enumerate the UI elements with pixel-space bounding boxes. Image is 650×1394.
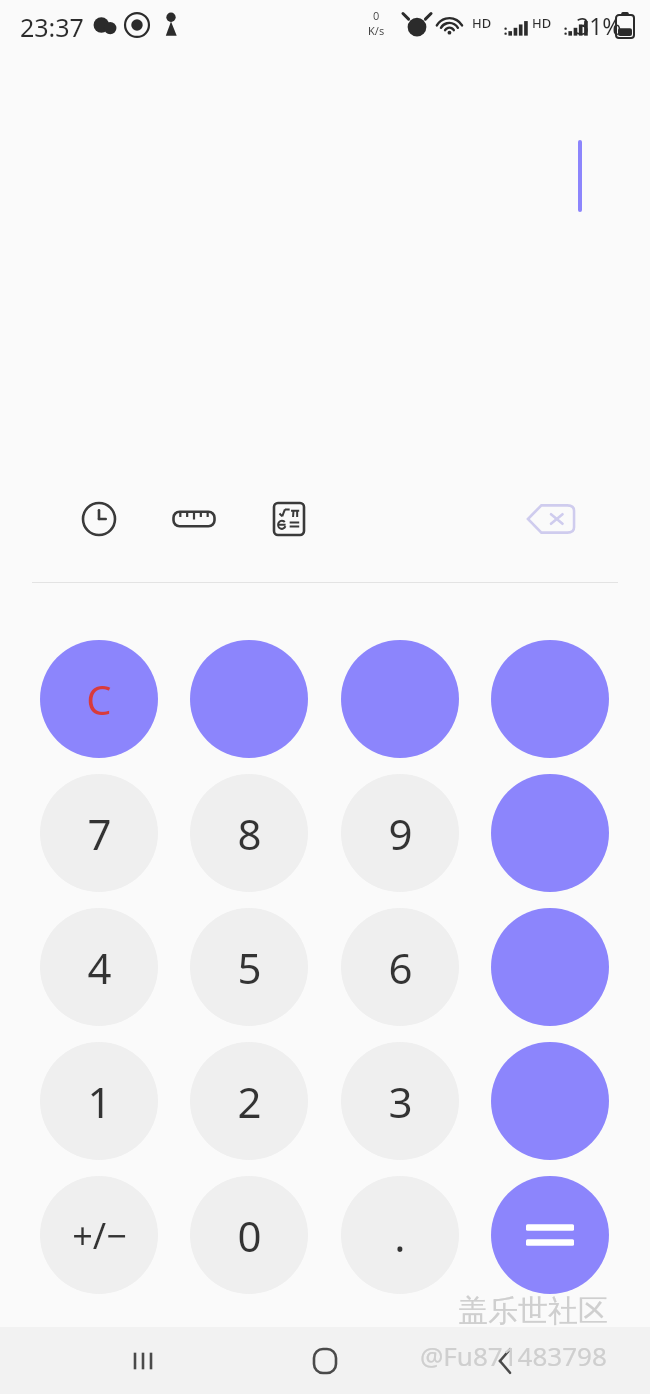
staticText: @Fu871483798 [420,1338,607,1373]
button[interactable]: Parentheses [491,1042,609,1160]
staticText: 5 [237,939,262,996]
button[interactable]: 4 [40,908,158,1026]
button[interactable]: 6 [341,908,459,1026]
button[interactable]: +/− [40,1176,158,1294]
staticText: 6 [388,939,413,996]
button[interactable]: 5 [190,908,308,1026]
staticText: 9 [388,805,413,862]
staticText: HD [532,14,552,32]
button[interactable]: Multiply [341,640,459,758]
button[interactable]: Formulas [262,492,316,546]
button[interactable]: 0 [190,1176,308,1294]
staticText: 4 [87,939,112,996]
button[interactable]: . [341,1176,459,1294]
staticText: 8 [237,805,262,862]
button[interactable]: Subtract [491,640,609,758]
button[interactable]: 7 [40,774,158,892]
button[interactable]: Add [491,774,609,892]
staticText: 7 [87,805,112,862]
staticText: C [86,672,112,726]
staticText: 1 [87,1073,112,1130]
staticText: 0 [373,8,380,23]
button[interactable]: Backspace [522,492,580,546]
staticText: +/− [72,1211,127,1260]
button[interactable]: Equals [491,1176,609,1294]
button[interactable]: C [40,640,158,758]
button[interactable]: 2 [190,1042,308,1160]
button[interactable]: Percent [491,908,609,1026]
staticText: 31% [576,10,622,41]
button[interactable]: 9 [341,774,459,892]
staticText: 3 [388,1073,413,1130]
staticText: 0 [237,1207,262,1264]
button[interactable]: Divide [190,640,308,758]
staticText: 2 [237,1073,262,1130]
staticText: K/s [368,23,385,38]
button[interactable]: History [72,492,126,546]
staticText: HD [472,14,492,32]
button[interactable]: Back [465,1327,545,1394]
staticText: 盖乐世社区 [458,1292,608,1330]
button[interactable]: Unit converter [167,492,221,546]
staticText: . [394,1207,406,1264]
button[interactable]: 3 [341,1042,459,1160]
staticText: 23:37 [20,10,84,44]
button[interactable]: Recents [105,1327,185,1394]
button[interactable]: 8 [190,774,308,892]
button[interactable]: Home [285,1327,365,1394]
button[interactable]: 1 [40,1042,158,1160]
